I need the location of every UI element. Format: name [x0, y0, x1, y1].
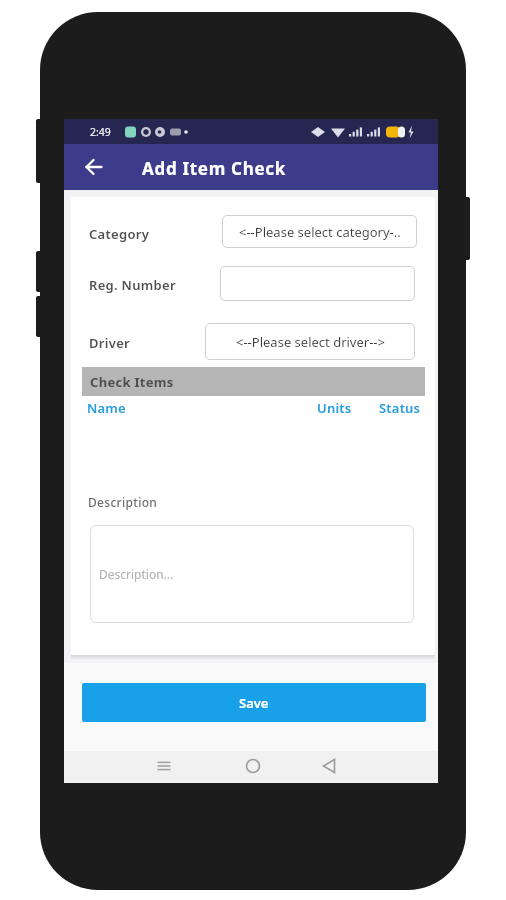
staticText: Save: [239, 694, 269, 712]
staticText: Category: [89, 225, 150, 243]
staticText: Driver: [89, 334, 130, 352]
staticText: <--Please select category-..: [239, 223, 401, 241]
staticText: Status: [379, 399, 421, 417]
staticText: Reg. Number: [89, 276, 176, 294]
staticText: Description: [88, 494, 158, 510]
staticText: Description...: [99, 566, 174, 582]
staticText: <--Please select driver-->: [236, 333, 385, 351]
staticText: Name: [87, 399, 126, 417]
staticText: Add Item Check: [142, 157, 287, 180]
staticText: Check Items: [90, 373, 174, 391]
staticText: Units: [317, 399, 352, 417]
staticText: 2:49: [90, 125, 111, 139]
